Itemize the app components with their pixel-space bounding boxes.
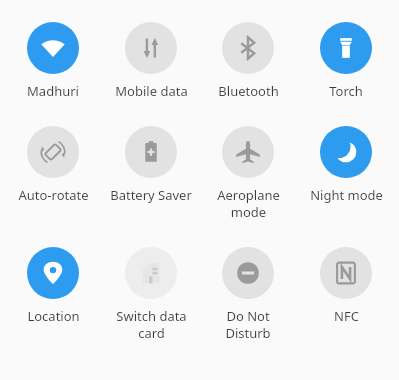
- button[interactable]: Torch: [301, 22, 391, 100]
- staticText: Bluetooth: [218, 82, 279, 100]
- button[interactable]: Switch data card: [106, 247, 196, 342]
- button[interactable]: Mobile data: [106, 22, 196, 100]
- button[interactable]: Location: [8, 247, 98, 325]
- button[interactable]: Bluetooth: [203, 22, 293, 100]
- staticText: Mobile data: [115, 82, 188, 100]
- staticText: Auto-rotate: [18, 186, 89, 204]
- staticText: Madhuri: [27, 82, 79, 100]
- button[interactable]: Aeroplane mode: [203, 126, 293, 221]
- button[interactable]: Night mode: [301, 126, 391, 204]
- button[interactable]: NFC: [301, 247, 391, 325]
- staticText: Night mode: [310, 186, 383, 204]
- staticText: NFC: [334, 307, 359, 325]
- button[interactable]: Battery Saver: [106, 126, 196, 204]
- staticText: Do Not Disturb: [203, 307, 293, 342]
- button[interactable]: Auto-rotate: [8, 126, 98, 204]
- staticText: Switch data card: [116, 307, 187, 342]
- staticText: Battery Saver: [110, 186, 192, 204]
- button[interactable]: Do Not Disturb: [203, 247, 293, 342]
- staticText: Torch: [329, 82, 363, 100]
- staticText: Aeroplane mode: [217, 186, 280, 221]
- button[interactable]: Madhuri: [8, 22, 98, 100]
- staticText: Location: [27, 307, 80, 325]
